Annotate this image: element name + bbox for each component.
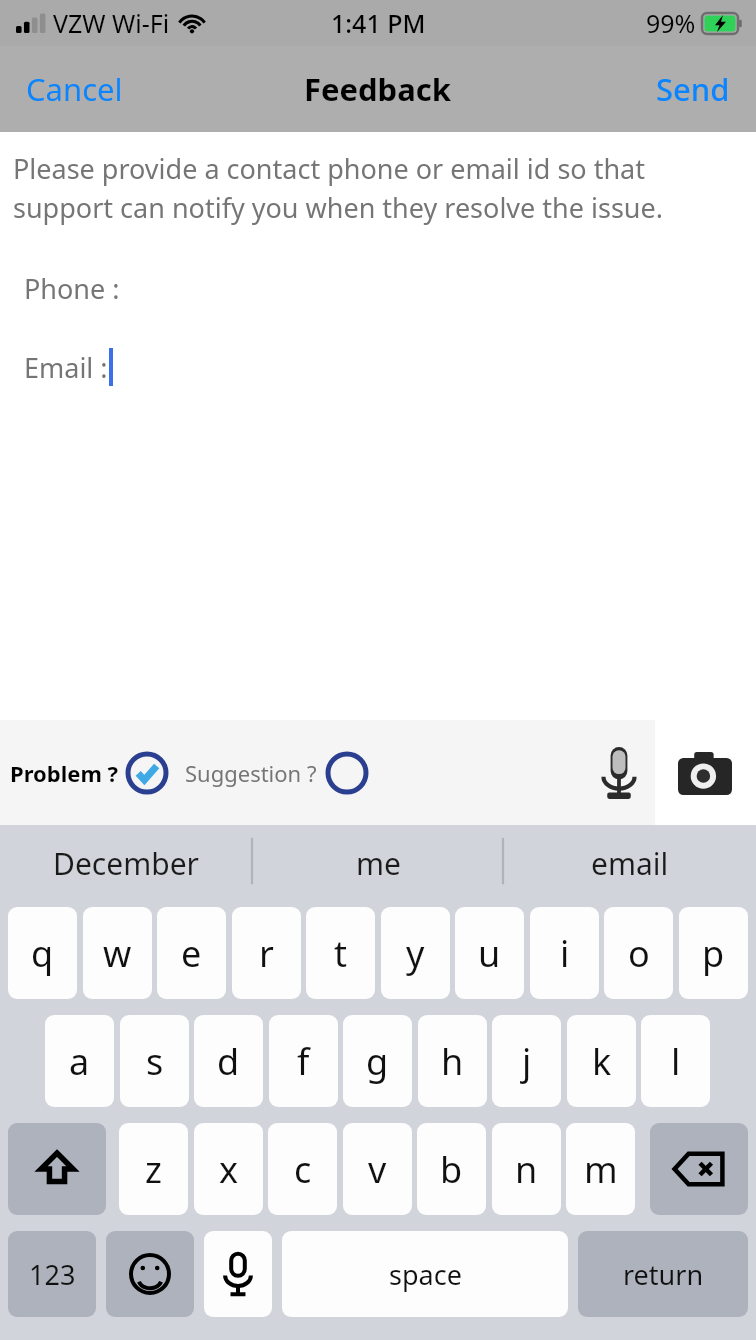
staticText: Cancel bbox=[26, 68, 123, 110]
staticText: me bbox=[356, 843, 401, 884]
button[interactable]: me bbox=[252, 825, 504, 901]
button[interactable]: Cancel bbox=[0, 54, 149, 124]
button[interactable]: email bbox=[504, 825, 756, 901]
button[interactable]: r bbox=[232, 907, 301, 999]
staticText: y bbox=[406, 929, 425, 978]
staticText: 123 bbox=[29, 1256, 76, 1293]
button[interactable]: f bbox=[269, 1015, 338, 1107]
button[interactable]: d bbox=[194, 1015, 263, 1107]
button[interactable]: b bbox=[417, 1123, 486, 1215]
staticText: k bbox=[592, 1037, 612, 1086]
staticText: Please provide a contact phone or email … bbox=[13, 150, 728, 226]
staticText: q bbox=[31, 929, 54, 978]
button[interactable]: z bbox=[119, 1123, 188, 1215]
button[interactable]: w bbox=[83, 907, 152, 999]
button[interactable]: n bbox=[492, 1123, 561, 1215]
staticText: u bbox=[478, 929, 501, 978]
staticText: Send bbox=[656, 68, 730, 110]
staticText: Phone : bbox=[24, 270, 120, 307]
button[interactable]: December bbox=[0, 825, 252, 901]
button[interactable]: Take photo bbox=[670, 743, 740, 803]
button[interactable]: Suggestion ? bbox=[185, 743, 369, 803]
staticText: x bbox=[219, 1145, 239, 1194]
button[interactable]: h bbox=[418, 1015, 487, 1107]
staticText: p bbox=[702, 929, 725, 978]
button[interactable]: m bbox=[566, 1123, 635, 1215]
button[interactable]: Send bbox=[630, 54, 756, 124]
staticText: Problem ? bbox=[10, 758, 119, 788]
staticText: o bbox=[628, 929, 650, 978]
staticText: z bbox=[145, 1145, 162, 1194]
staticText: v bbox=[368, 1145, 387, 1194]
button[interactable]: e bbox=[157, 907, 226, 999]
staticText: space bbox=[389, 1256, 462, 1293]
button[interactable]: Dictate bbox=[204, 1231, 272, 1317]
button[interactable]: Record audio bbox=[590, 738, 648, 808]
staticText: c bbox=[294, 1145, 312, 1194]
button[interactable]: Shift bbox=[8, 1123, 106, 1215]
staticText: a bbox=[69, 1037, 90, 1086]
button[interactable]: p bbox=[679, 907, 748, 999]
button[interactable]: Problem ? bbox=[10, 743, 169, 803]
staticText: m bbox=[584, 1145, 618, 1194]
staticText: 1:41 PM bbox=[331, 6, 426, 40]
staticText: return bbox=[623, 1256, 704, 1293]
button[interactable]: c bbox=[268, 1123, 337, 1215]
staticText: 99% bbox=[646, 6, 696, 40]
button[interactable]: space bbox=[282, 1231, 568, 1317]
button[interactable]: t bbox=[306, 907, 375, 999]
staticText: g bbox=[366, 1037, 389, 1086]
button[interactable]: y bbox=[381, 907, 450, 999]
staticText: t bbox=[334, 929, 347, 978]
staticText: r bbox=[259, 929, 274, 978]
staticText: w bbox=[103, 929, 132, 978]
staticText: b bbox=[440, 1145, 463, 1194]
button[interactable]: 123 bbox=[8, 1231, 96, 1317]
staticText: Suggestion ? bbox=[185, 758, 317, 788]
staticText: f bbox=[297, 1037, 310, 1086]
staticText: i bbox=[560, 929, 570, 978]
button[interactable]: o bbox=[604, 907, 673, 999]
button[interactable]: i bbox=[530, 907, 599, 999]
button[interactable]: return bbox=[578, 1231, 748, 1317]
staticText: December bbox=[53, 843, 199, 884]
button[interactable]: g bbox=[343, 1015, 412, 1107]
staticText: e bbox=[181, 929, 202, 978]
staticText: n bbox=[515, 1145, 538, 1194]
button[interactable]: q bbox=[8, 907, 77, 999]
button[interactable]: Backspace bbox=[650, 1123, 748, 1215]
button[interactable]: x bbox=[194, 1123, 263, 1215]
staticText: Feedback bbox=[304, 68, 452, 110]
button[interactable]: j bbox=[492, 1015, 561, 1107]
staticText: s bbox=[146, 1037, 164, 1086]
button[interactable]: l bbox=[641, 1015, 710, 1107]
button[interactable]: v bbox=[343, 1123, 412, 1215]
staticText: VZW Wi-Fi bbox=[53, 6, 170, 40]
button[interactable]: u bbox=[455, 907, 524, 999]
button[interactable]: k bbox=[567, 1015, 636, 1107]
staticText: l bbox=[671, 1037, 681, 1086]
staticText: j bbox=[522, 1037, 532, 1086]
button[interactable]: Emoji bbox=[106, 1231, 194, 1317]
staticText: d bbox=[217, 1037, 240, 1086]
button[interactable]: s bbox=[120, 1015, 189, 1107]
button[interactable]: a bbox=[45, 1015, 114, 1107]
staticText: Email : bbox=[24, 349, 108, 386]
staticText: h bbox=[441, 1037, 464, 1086]
staticText: email bbox=[591, 843, 669, 884]
